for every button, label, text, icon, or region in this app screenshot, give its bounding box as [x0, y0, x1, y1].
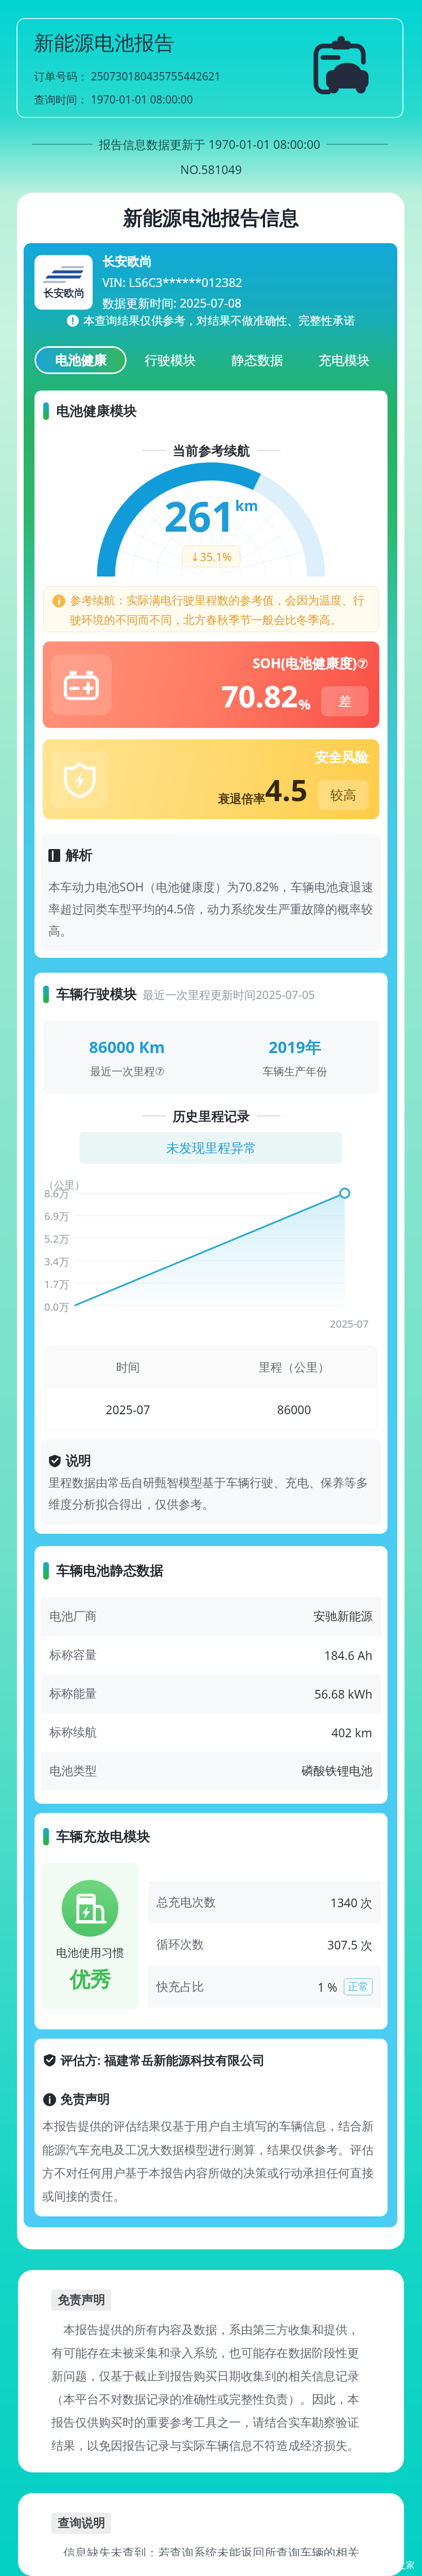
staticText: 行驶模块: [145, 352, 196, 368]
staticText: 安全风险: [315, 749, 368, 766]
staticText: km: [235, 496, 258, 515]
staticText: 长安欧尚: [43, 287, 84, 300]
staticText: 评估方: 福建常岳新能源科技有限公司: [60, 2052, 265, 2068]
staticText: 循环次数: [156, 1937, 204, 1952]
staticText: 86000 Km: [89, 1036, 165, 1058]
staticText: 差: [339, 693, 351, 709]
button[interactable]: 电池健康: [34, 346, 127, 374]
staticText: 车辆电池静态数据: [56, 1563, 163, 1580]
staticText: 里程数据由常岳自研甄智模型基于车辆行驶、充电、保养等多维度分析拟合得出，仅供参考…: [48, 1476, 374, 1512]
staticText: 静态数据: [232, 352, 283, 368]
button[interactable]: 行驶模块: [127, 346, 214, 374]
staticText: 184.6 Ah: [324, 1647, 373, 1663]
staticText: 1 %: [318, 1979, 338, 1995]
staticText: 衰退倍率: [218, 792, 265, 807]
staticText: 时间: [45, 1360, 211, 1375]
staticText: 2025-07: [45, 1401, 211, 1417]
staticText: 信息缺失未查到：若查询系统未能返回所查询车辆的相关记录（请注意，未查到数据并不直…: [51, 2544, 370, 2556]
staticText: 标称能量: [49, 1686, 97, 1701]
staticText: 参考续航：实际满电行驶里程数的参考值，会因为温度、行驶环境的不同而不同，北方春秋…: [70, 594, 372, 627]
other: Battery report: [310, 36, 374, 100]
staticText: 4.5: [265, 769, 308, 810]
staticText: 查询时间： 1970-01-01 08:00:00: [34, 92, 193, 107]
staticText: 新能源电池报告信息: [17, 206, 405, 231]
staticText: 56.68 kWh: [314, 1686, 373, 1702]
staticText: VIN: LS6C3******012382: [102, 274, 242, 290]
staticText: 8.6万: [44, 1187, 69, 1200]
staticText: 磷酸铁锂电池: [302, 1764, 373, 1778]
staticText: 2019年: [269, 1036, 321, 1058]
staticText: 307.5 次: [327, 1937, 373, 1953]
staticText: 电池健康: [55, 352, 107, 368]
staticText: 车辆生产年份: [262, 1065, 327, 1078]
staticText: 车辆行驶模块: [56, 986, 136, 1003]
staticText: 最近一次里程更新时间2025-07-05: [143, 987, 315, 1002]
staticText: 261: [164, 487, 235, 544]
other: Charging: [74, 1892, 107, 1925]
staticText: 6.9万: [44, 1209, 69, 1223]
staticText: 查询说明: [58, 2516, 105, 2531]
staticText: 较高: [330, 787, 356, 803]
staticText: 充电模块: [319, 352, 370, 368]
staticText: 订单号码： 250730180435755442621: [34, 69, 221, 84]
staticText: 本报告提供的所有内容及数据，系由第三方收集和提供，有可能存在未被采集和录入系统，…: [51, 2321, 370, 2453]
staticText: %: [298, 695, 311, 713]
staticText: 电池厂商: [49, 1609, 97, 1624]
staticText: 本车动力电池SOH（电池健康度）为70.82%，车辆电池衰退速率超过同类车型平均…: [48, 878, 374, 939]
staticText: 免责声明: [58, 2293, 105, 2308]
staticText: 总充电次数: [156, 1895, 216, 1910]
staticText: 本报告提供的评估结果仅基于用户自主填写的车辆信息，结合新能源汽车充电及工况大数据…: [42, 2119, 377, 2204]
staticText: NO.581049: [0, 161, 422, 177]
staticText: 电池健康模块: [56, 403, 136, 420]
staticText: 3.4万: [44, 1255, 69, 1268]
staticText: 本查询结果仅供参考，对结果不做准确性、完整性承诺: [83, 314, 355, 327]
staticText: 车辆充放电模块: [56, 1828, 150, 1845]
staticText: 1340 次: [330, 1894, 373, 1910]
staticText: 5.2万: [44, 1232, 69, 1246]
staticText: 正常: [348, 1980, 368, 1993]
staticText: 数据更新时间: 2025-07-08: [102, 295, 242, 311]
staticText: 长安欧尚: [102, 254, 152, 269]
staticText: 电池类型: [49, 1764, 97, 1778]
staticText: 历史里程记录: [166, 1107, 257, 1125]
staticText: 安驰新能源: [313, 1609, 373, 1624]
staticText: 快充占比: [156, 1979, 204, 1994]
other: Risk: [63, 761, 97, 798]
other: Battery: [63, 669, 100, 701]
staticText: 86000: [211, 1401, 377, 1417]
staticText: 标称续航: [49, 1725, 97, 1740]
staticText: 汽车之家: [380, 2560, 415, 2571]
staticText: 未发现里程异常: [166, 1140, 256, 1156]
staticText: SOH(电池健康度)⑦: [253, 654, 368, 672]
staticText: 402 km: [331, 1724, 373, 1740]
staticText: 2025-07: [330, 1317, 369, 1331]
staticText: 0.0万: [44, 1300, 69, 1314]
staticText: 70.82: [221, 675, 298, 716]
button[interactable]: 充电模块: [301, 346, 388, 374]
staticText: 优秀: [69, 1967, 111, 1992]
button[interactable]: 静态数据: [214, 346, 301, 374]
staticText: 报告信息数据更新于 1970-01-01 08:00:00: [93, 136, 327, 152]
staticText: 新能源电池报告: [34, 30, 174, 56]
staticText: 电池使用习惯: [56, 1946, 124, 1960]
staticText: 免责声明: [60, 2092, 110, 2107]
staticText: 最近一次里程⑦: [90, 1065, 165, 1078]
staticText: 说明: [65, 1453, 91, 1469]
staticText: 解析: [65, 847, 92, 864]
staticText: ↓35.1%: [190, 549, 232, 564]
staticText: 当前参考续航: [166, 442, 257, 459]
staticText: 标称容量: [49, 1648, 97, 1663]
staticText: 里程（公里）: [211, 1360, 377, 1375]
staticText: （公里）: [44, 1179, 85, 1192]
staticText: 1.7万: [44, 1277, 69, 1291]
